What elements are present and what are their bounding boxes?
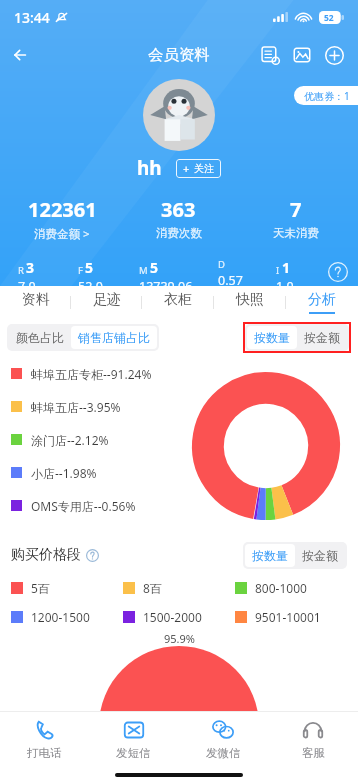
staticText: 会员资料 xyxy=(148,45,210,65)
staticText: 5 xyxy=(150,258,159,277)
staticText: I xyxy=(276,264,280,277)
button[interactable]: Avatar xyxy=(143,79,215,151)
button[interactable]: 涂门店--2.12% xyxy=(11,423,358,456)
button[interactable]: 蚌埠五店--3.95% xyxy=(11,390,358,423)
staticText: 1 xyxy=(282,258,291,277)
staticText: OMS专用店--0.56% xyxy=(31,498,136,514)
staticText: R xyxy=(18,264,24,277)
staticText: 9501-10001 xyxy=(255,609,321,625)
staticText: 按数量 xyxy=(252,548,288,563)
staticText: 资料 xyxy=(22,291,50,309)
staticText: 销售店铺占比 xyxy=(78,330,150,345)
button[interactable]: 按金额 xyxy=(295,544,345,567)
button[interactable]: 颜色占比 xyxy=(9,326,71,349)
button[interactable]: 打电话 xyxy=(0,719,89,783)
staticText: 52.0 xyxy=(78,278,103,286)
button[interactable]: OMS专用店--0.56% xyxy=(11,489,358,522)
staticText: 小店--1.98% xyxy=(31,465,97,481)
staticText: 1.0 xyxy=(276,278,294,286)
staticText: 客服 xyxy=(302,746,325,760)
button[interactable]: 客服 xyxy=(268,719,358,783)
staticText: 颜色占比 xyxy=(16,330,64,345)
button[interactable]: 快照 xyxy=(214,286,286,319)
button[interactable]: Records xyxy=(254,39,286,71)
staticText: 购买价格段 xyxy=(11,546,81,564)
staticText: 1500-2000 xyxy=(143,609,202,625)
button[interactable]: 1500-2000 xyxy=(123,609,235,625)
staticText: 发短信 xyxy=(116,746,151,760)
staticText: 消费金额 > xyxy=(34,226,90,242)
staticText: hh xyxy=(137,155,162,181)
other: Info xyxy=(86,549,99,562)
button[interactable]: 122361 xyxy=(4,196,120,242)
staticText: 7 xyxy=(290,196,302,223)
button[interactable]: 分析 xyxy=(286,286,358,319)
button[interactable]: 5百 xyxy=(11,580,123,596)
staticText: 1200-1500 xyxy=(31,609,90,625)
button[interactable]: 蚌埠五店专柜--91.24% xyxy=(11,357,358,390)
staticText: 足迹 xyxy=(93,291,121,309)
staticText: 快照 xyxy=(236,291,264,309)
staticText: 涂门店--2.12% xyxy=(31,432,109,448)
button[interactable]: Photos xyxy=(286,39,318,71)
staticText: 蚌埠五店--3.95% xyxy=(31,399,121,415)
button[interactable]: 小店--1.98% xyxy=(11,456,358,489)
staticText: 122361 xyxy=(28,196,97,223)
staticText: 800-1000 xyxy=(255,580,307,596)
button[interactable]: 按金额 xyxy=(297,326,347,349)
staticText: 7.0 xyxy=(18,278,36,286)
staticText: 发微信 xyxy=(206,746,241,760)
button[interactable]: Add xyxy=(318,39,350,71)
button[interactable]: Back xyxy=(6,38,40,72)
button[interactable]: 销售店铺占比 xyxy=(71,326,157,349)
staticText: 5 xyxy=(85,258,94,277)
staticText: 13739.06 xyxy=(139,278,193,286)
staticText: F xyxy=(78,264,83,277)
button[interactable]: 7 xyxy=(237,196,354,240)
staticText: 8百 xyxy=(143,580,162,596)
button[interactable]: 8百 xyxy=(123,580,235,596)
staticText: 5百 xyxy=(31,580,50,596)
staticText: D xyxy=(218,258,225,271)
button[interactable]: 发短信 xyxy=(89,719,178,783)
button[interactable]: 363 xyxy=(120,196,237,240)
staticText: 分析 xyxy=(308,291,336,309)
button[interactable]: 足迹 xyxy=(71,286,142,319)
staticText: 天未消费 xyxy=(273,226,319,240)
button[interactable]: 衣柜 xyxy=(142,286,214,319)
button[interactable]: 优惠券：1 xyxy=(294,86,358,105)
staticText: 按金额 xyxy=(304,330,340,345)
staticText: + xyxy=(183,161,190,176)
button[interactable]: Help xyxy=(324,258,352,286)
button[interactable]: 发微信 xyxy=(178,719,268,783)
staticText: 0.57 xyxy=(218,272,243,286)
staticText: 衣柜 xyxy=(164,291,192,309)
staticText: 蚌埠五店专柜--91.24% xyxy=(31,366,152,382)
button[interactable]: 按数量 xyxy=(247,326,297,349)
staticText: 52 xyxy=(324,12,334,24)
button[interactable]: 按数量 xyxy=(245,544,295,567)
button[interactable]: + xyxy=(176,159,221,178)
button[interactable]: 资料 xyxy=(0,286,71,319)
staticText: 消费次数 xyxy=(156,226,202,240)
staticText: 关注 xyxy=(194,162,214,175)
staticText: 按数量 xyxy=(254,330,290,345)
button[interactable]: 1200-1500 xyxy=(11,609,123,625)
staticText: 优惠券：1 xyxy=(304,89,350,103)
staticText: 按金额 xyxy=(302,548,338,563)
button[interactable]: 9501-10001 xyxy=(235,609,347,625)
staticText: 95.9% xyxy=(164,631,195,646)
staticText: 363 xyxy=(161,196,196,223)
button[interactable]: 800-1000 xyxy=(235,580,347,596)
staticText: 打电话 xyxy=(27,746,62,760)
staticText: M xyxy=(139,264,148,277)
staticText: 13:44 xyxy=(14,8,50,27)
staticText: 3 xyxy=(26,258,35,277)
